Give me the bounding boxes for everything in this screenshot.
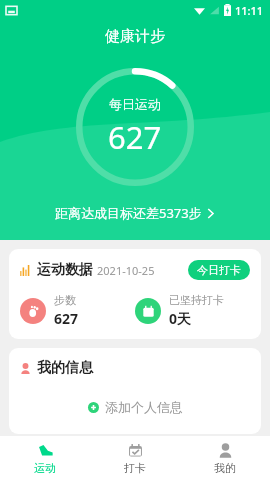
button[interactable]: 添加个人信息 bbox=[88, 399, 183, 415]
button[interactable]: 今日打卡 bbox=[188, 260, 250, 280]
staticText: 步数 bbox=[54, 293, 76, 307]
button[interactable]: 距离达成目标还差5373步 bbox=[55, 204, 215, 222]
staticText: 627 bbox=[54, 309, 79, 328]
staticText: 距离达成目标还差5373步 bbox=[55, 204, 202, 222]
button[interactable]: 我的 bbox=[180, 436, 270, 480]
staticText: 每日运动 bbox=[109, 96, 161, 112]
staticText: 2021-10-25 bbox=[97, 263, 155, 278]
staticText: 11:11 bbox=[235, 3, 264, 18]
staticText: 运动数据 bbox=[37, 261, 93, 279]
staticText: 我的信息 bbox=[37, 359, 93, 377]
staticText: 已坚持打卡 bbox=[169, 293, 224, 307]
staticText: 添加个人信息 bbox=[105, 399, 183, 415]
staticText: 运动 bbox=[34, 461, 56, 475]
staticText: 打卡 bbox=[124, 461, 146, 475]
staticText: 今日打卡 bbox=[197, 263, 241, 277]
staticText: 我的 bbox=[214, 461, 236, 475]
button[interactable]: 运动 bbox=[0, 436, 90, 480]
staticText: 627 bbox=[108, 116, 162, 158]
button[interactable]: 打卡 bbox=[90, 436, 180, 480]
staticText: 0天 bbox=[169, 309, 192, 328]
staticText: 健康计步 bbox=[105, 27, 165, 46]
